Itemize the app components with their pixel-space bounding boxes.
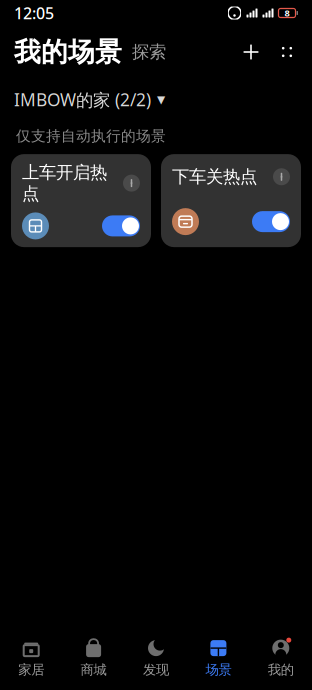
button[interactable]: 下车关热点 xyxy=(161,154,301,247)
staticText: ▼ xyxy=(157,93,165,106)
staticText: 下车关热点 xyxy=(172,166,257,187)
staticText: 发现 xyxy=(143,662,169,678)
button[interactable]: 发现 xyxy=(125,633,187,684)
staticText: IMBOW的家 (2/2) xyxy=(14,88,151,111)
button[interactable]: 上车开启热点 xyxy=(11,154,151,247)
button[interactable]: 家居 xyxy=(0,633,62,684)
button[interactable]: 商城 xyxy=(62,633,125,684)
staticText: 我的场景 xyxy=(14,36,122,68)
staticText: 我的 xyxy=(268,662,294,678)
button[interactable]: 添加场景 xyxy=(240,41,262,63)
staticText: 8 xyxy=(284,7,289,19)
staticText: 商城 xyxy=(81,662,107,678)
button[interactable]: 场景 xyxy=(187,633,250,684)
staticText: 上车开启热点 xyxy=(22,162,107,204)
staticText: 12:05 xyxy=(14,2,54,24)
button[interactable]: IMBOW的家 (2/2) xyxy=(14,82,165,117)
staticText: 仅支持自动执行的场景 xyxy=(16,127,166,145)
staticText: 家居 xyxy=(18,662,44,678)
button[interactable]: 我的 xyxy=(250,633,312,684)
button[interactable]: 更多 xyxy=(262,41,298,63)
button[interactable]: 探索 xyxy=(122,35,166,69)
staticText: 场景 xyxy=(205,662,231,678)
staticText: 探索 xyxy=(132,41,166,63)
